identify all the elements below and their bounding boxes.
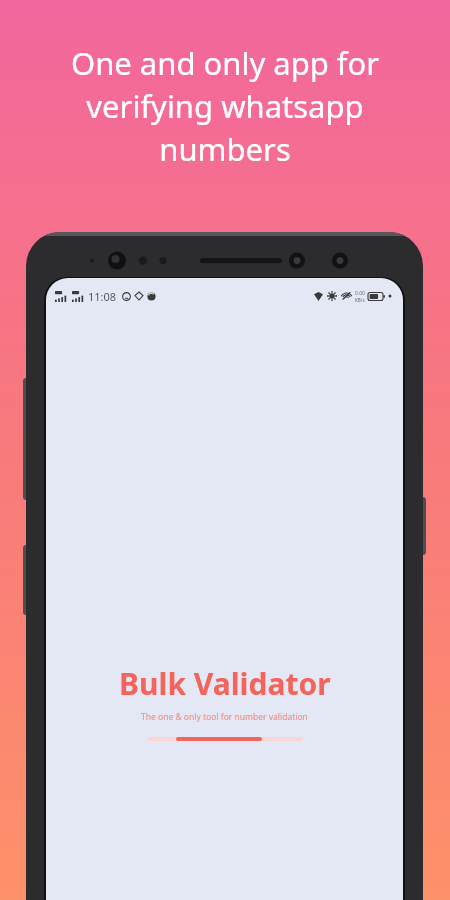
button[interactable]: Power button: [418, 497, 426, 555]
staticText: 0.00: [355, 290, 365, 297]
staticText: 11:08: [88, 289, 117, 304]
staticText: Bulk Validator: [119, 663, 331, 704]
staticText: KB/s: [355, 297, 365, 303]
button[interactable]: Assistant button: [23, 545, 31, 615]
staticText: One and only app for verifying whatsapp …: [28, 42, 422, 170]
button[interactable]: Volume buttons: [23, 378, 31, 500]
staticText: The one & only tool for number validatio…: [141, 711, 308, 723]
button[interactable]: Bulk Validator splash screen: [46, 278, 403, 900]
